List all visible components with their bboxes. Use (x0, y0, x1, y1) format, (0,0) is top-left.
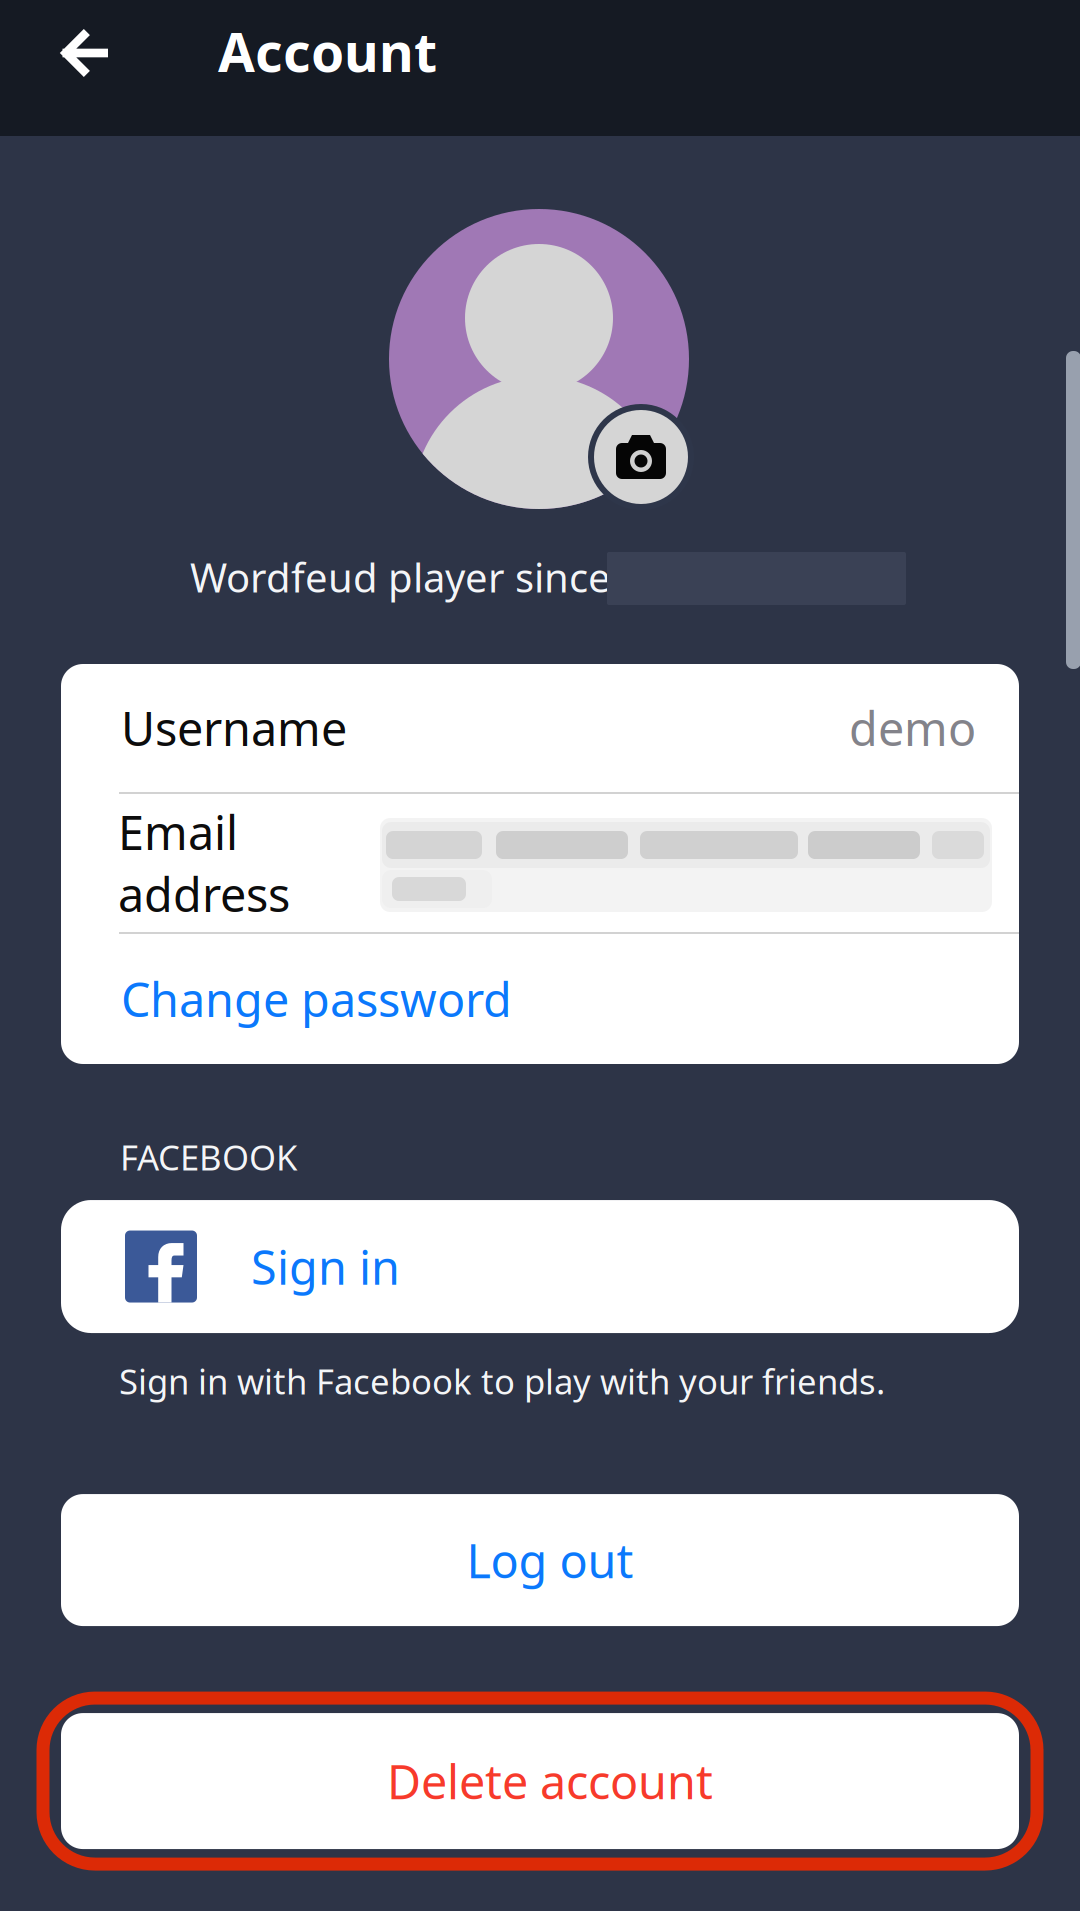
staticText: Wordfeud player since (190, 550, 611, 603)
button[interactable]: Username (61, 664, 1019, 792)
staticText: Username (121, 697, 347, 759)
button[interactable]: Sign in (61, 1200, 1019, 1333)
staticText: FACEBOOK (120, 1134, 297, 1180)
staticText: Sign in with Facebook to play with your … (119, 1358, 885, 1404)
button[interactable]: Change password (61, 934, 1019, 1064)
staticText: demo (849, 697, 976, 759)
button[interactable]: Log out (61, 1494, 1019, 1626)
staticText: Log out (466, 1529, 633, 1591)
staticText: Change password (121, 968, 512, 1030)
staticText: Email address (118, 801, 290, 925)
staticText: Sign in (251, 1236, 400, 1298)
button[interactable]: Email address (61, 794, 1019, 932)
button[interactable]: Delete account (43, 1698, 1037, 1864)
button[interactable]: Change profile picture (591, 407, 691, 507)
button[interactable]: Back (0, 0, 140, 136)
staticText: Account (218, 16, 437, 87)
staticText: Delete account (387, 1750, 713, 1812)
